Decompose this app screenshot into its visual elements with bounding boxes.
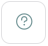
button[interactable]: Help: [0, 0, 48, 46]
